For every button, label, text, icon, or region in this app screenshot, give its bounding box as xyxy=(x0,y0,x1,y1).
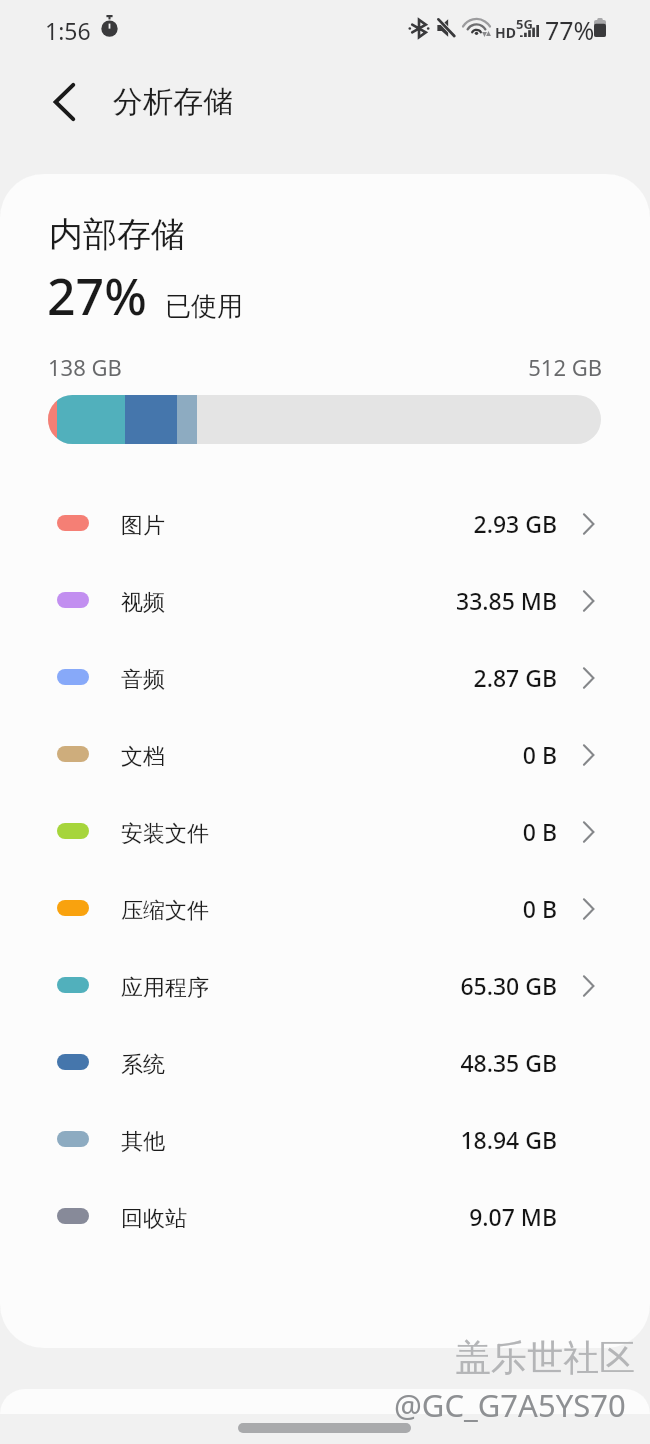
staticText: 图片 xyxy=(121,512,165,540)
staticText: 2.93 GB xyxy=(357,508,557,539)
button[interactable]: 系统 xyxy=(0,1023,650,1100)
staticText: 应用程序 xyxy=(121,974,209,1002)
staticText: 压缩文件 xyxy=(121,897,209,925)
staticText: 安装文件 xyxy=(121,820,209,848)
button[interactable]: 回收站 xyxy=(0,1177,650,1254)
staticText: @GC_G7A5YS70 xyxy=(394,1384,626,1426)
staticText: 0 B xyxy=(357,739,557,770)
button[interactable]: 应用程序 xyxy=(0,946,650,1023)
staticText: 音频 xyxy=(121,666,165,694)
staticText: 0 B xyxy=(357,893,557,924)
staticText: 5G xyxy=(516,15,533,33)
staticText: 文档 xyxy=(121,743,165,771)
staticText: 1:56 xyxy=(45,15,91,46)
staticText: 内部存储 xyxy=(49,213,185,256)
staticText: 盖乐世社区 xyxy=(455,1335,635,1380)
staticText: 系统 xyxy=(121,1051,165,1079)
button[interactable]: 压缩文件 xyxy=(0,869,650,946)
staticText: 其他 xyxy=(121,1128,165,1156)
staticText: 138 GB xyxy=(48,352,122,382)
staticText: 512 GB xyxy=(452,352,602,382)
button[interactable]: 音频 xyxy=(0,638,650,715)
staticText: 视频 xyxy=(121,589,165,617)
staticText: 0 B xyxy=(357,816,557,847)
staticText: 已使用 xyxy=(165,290,243,323)
button[interactable]: 文档 xyxy=(0,715,650,792)
staticText: 回收站 xyxy=(121,1205,187,1233)
staticText: 分析存储 xyxy=(113,83,233,121)
staticText: 48.35 GB xyxy=(357,1047,557,1078)
button[interactable]: 图片 xyxy=(0,484,650,561)
button[interactable]: 视频 xyxy=(0,561,650,638)
staticText: 77% xyxy=(545,13,595,47)
staticText: 33.85 MB xyxy=(357,585,557,616)
staticText: HD xyxy=(495,23,516,42)
button[interactable]: 其他 xyxy=(0,1100,650,1177)
button[interactable]: 安装文件 xyxy=(0,792,650,869)
button[interactable]: Back xyxy=(30,68,98,136)
staticText: 65.30 GB xyxy=(357,970,557,1001)
staticText: 2.87 GB xyxy=(357,662,557,693)
staticText: 18.94 GB xyxy=(357,1124,557,1155)
staticText: 9.07 MB xyxy=(357,1201,557,1232)
staticText: 27% xyxy=(47,262,147,330)
